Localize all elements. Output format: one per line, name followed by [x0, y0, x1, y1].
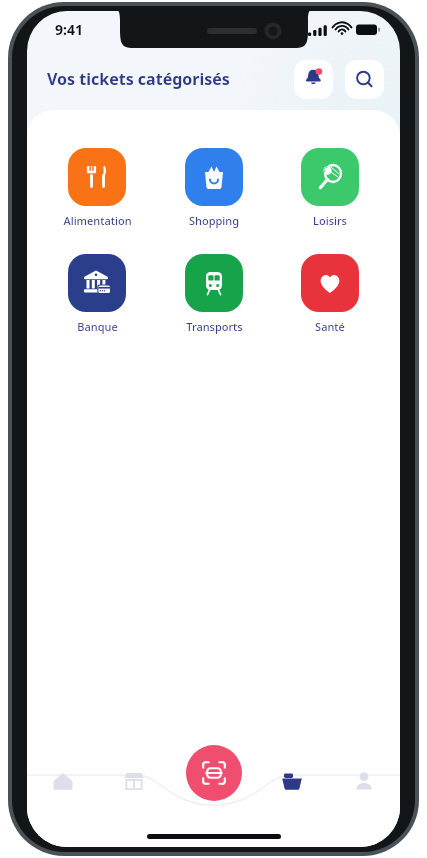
button[interactable]: Shops [98, 761, 170, 801]
button[interactable]: Tickets [256, 761, 328, 801]
staticText: Banque [77, 319, 118, 334]
button[interactable]: Santé [282, 254, 378, 334]
staticText: Transports [186, 319, 243, 334]
staticText: Shopping [189, 213, 239, 228]
button[interactable]: Home [27, 761, 98, 801]
button[interactable]: Transports [166, 254, 262, 334]
button[interactable]: Scan ticket [186, 745, 242, 801]
button[interactable]: Banque [49, 254, 145, 334]
button[interactable]: Alimentation [49, 148, 145, 228]
staticText: Santé [315, 319, 345, 334]
button[interactable]: Shopping [166, 148, 262, 228]
button[interactable]: Loisirs [282, 148, 378, 228]
button[interactable]: Search [345, 60, 384, 99]
button[interactable]: Profile [328, 761, 400, 801]
staticText: Vos tickets catégorisés [47, 68, 230, 90]
button[interactable]: Notifications [294, 60, 333, 99]
staticText: 9:41 [55, 20, 83, 39]
staticText: Alimentation [63, 213, 132, 228]
staticText: Loisirs [313, 213, 347, 228]
